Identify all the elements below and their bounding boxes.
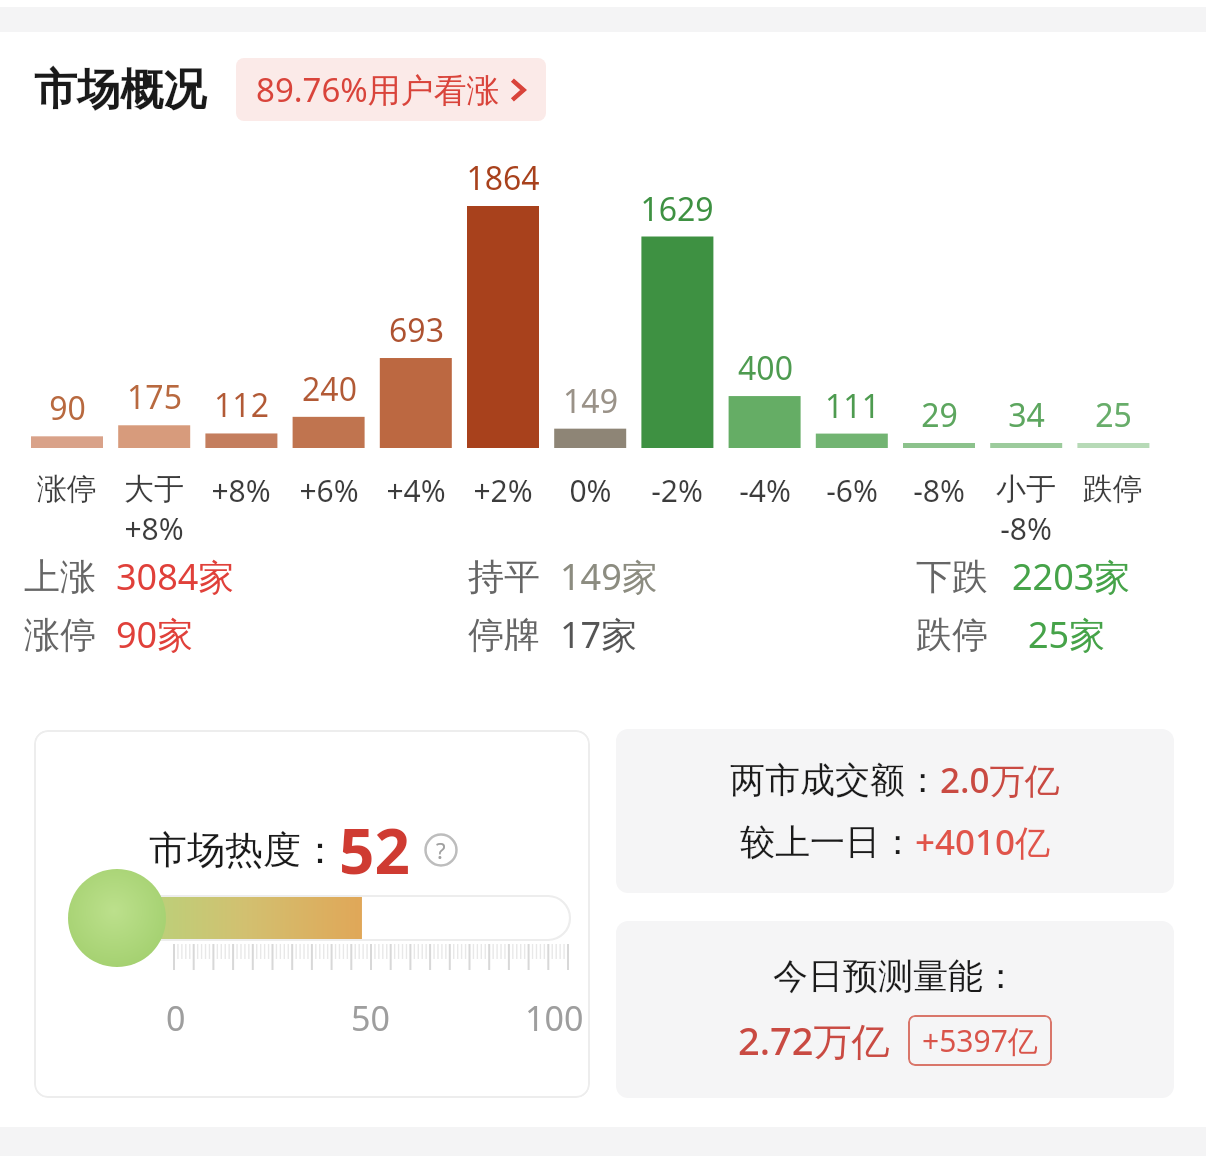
staticText: -4% [739, 470, 791, 511]
staticText: ? [436, 835, 446, 865]
staticText: 今日预测量能： [773, 954, 1018, 998]
staticText: 小于 [996, 470, 1056, 508]
staticText: 175 [127, 375, 182, 419]
staticText: 市场热度： [149, 826, 339, 874]
staticText: 693 [389, 308, 444, 352]
staticText: 涨停 [24, 612, 96, 657]
staticText: +5397亿 [922, 1020, 1038, 1061]
staticText: +8% [124, 508, 184, 549]
button[interactable]: 今日预测量能： [616, 921, 1174, 1098]
staticText: +8% [211, 470, 271, 511]
staticText: 两市成交额： [730, 758, 940, 802]
staticText: +4010亿 [915, 818, 1051, 866]
staticText: +6% [299, 470, 359, 511]
staticText: -8% [913, 470, 965, 511]
staticText: 25 [1095, 393, 1132, 437]
staticText: 1629 [640, 187, 714, 231]
staticText: 89.76%用户看涨 [256, 67, 500, 112]
staticText: 25家 [1028, 610, 1106, 659]
button[interactable]: Help [424, 833, 458, 867]
button[interactable]: 89.76%用户看涨 [236, 58, 546, 121]
staticText: 1864 [466, 156, 540, 200]
staticText: 3084家 [116, 552, 235, 601]
staticText: +4% [386, 470, 446, 511]
staticText: 17家 [560, 610, 638, 659]
button[interactable]: 两市成交额： [616, 729, 1174, 893]
staticText: 停牌 [468, 612, 540, 657]
staticText: 2.0万亿 [940, 756, 1060, 804]
staticText: -2% [651, 470, 703, 511]
staticText: 跌停 [916, 612, 988, 657]
staticText: 400 [738, 346, 793, 390]
staticText: 34 [1008, 393, 1045, 437]
staticText: 29 [921, 393, 958, 437]
staticText: 90家 [116, 610, 194, 659]
staticText: +2% [473, 470, 533, 511]
staticText: 0 [166, 995, 186, 1041]
staticText: 149家 [560, 552, 658, 601]
staticText: 50 [351, 995, 390, 1041]
staticText: 2.72万亿 [738, 1014, 890, 1066]
button[interactable]: 市场热度： [34, 730, 590, 1098]
staticText: 上涨 [24, 554, 96, 599]
staticText: 涨停 [37, 470, 97, 508]
staticText: 100 [525, 995, 584, 1041]
staticText: 大于 [124, 470, 184, 508]
staticText: 111 [825, 384, 880, 428]
staticText: -8% [1000, 508, 1052, 549]
staticText: 市场概况 [34, 63, 206, 117]
staticText: 149 [563, 379, 618, 423]
staticText: 较上一日： [740, 820, 915, 864]
staticText: -6% [826, 470, 878, 511]
staticText: 持平 [468, 554, 540, 599]
staticText: 52 [339, 808, 410, 892]
staticText: 240 [302, 367, 357, 411]
staticText: 下跌 [916, 554, 988, 599]
staticText: 2203家 [1012, 552, 1131, 601]
staticText: 跌停 [1083, 470, 1143, 508]
staticText: 0% [569, 470, 612, 511]
staticText: 90 [49, 386, 86, 430]
staticText: 112 [214, 383, 269, 427]
